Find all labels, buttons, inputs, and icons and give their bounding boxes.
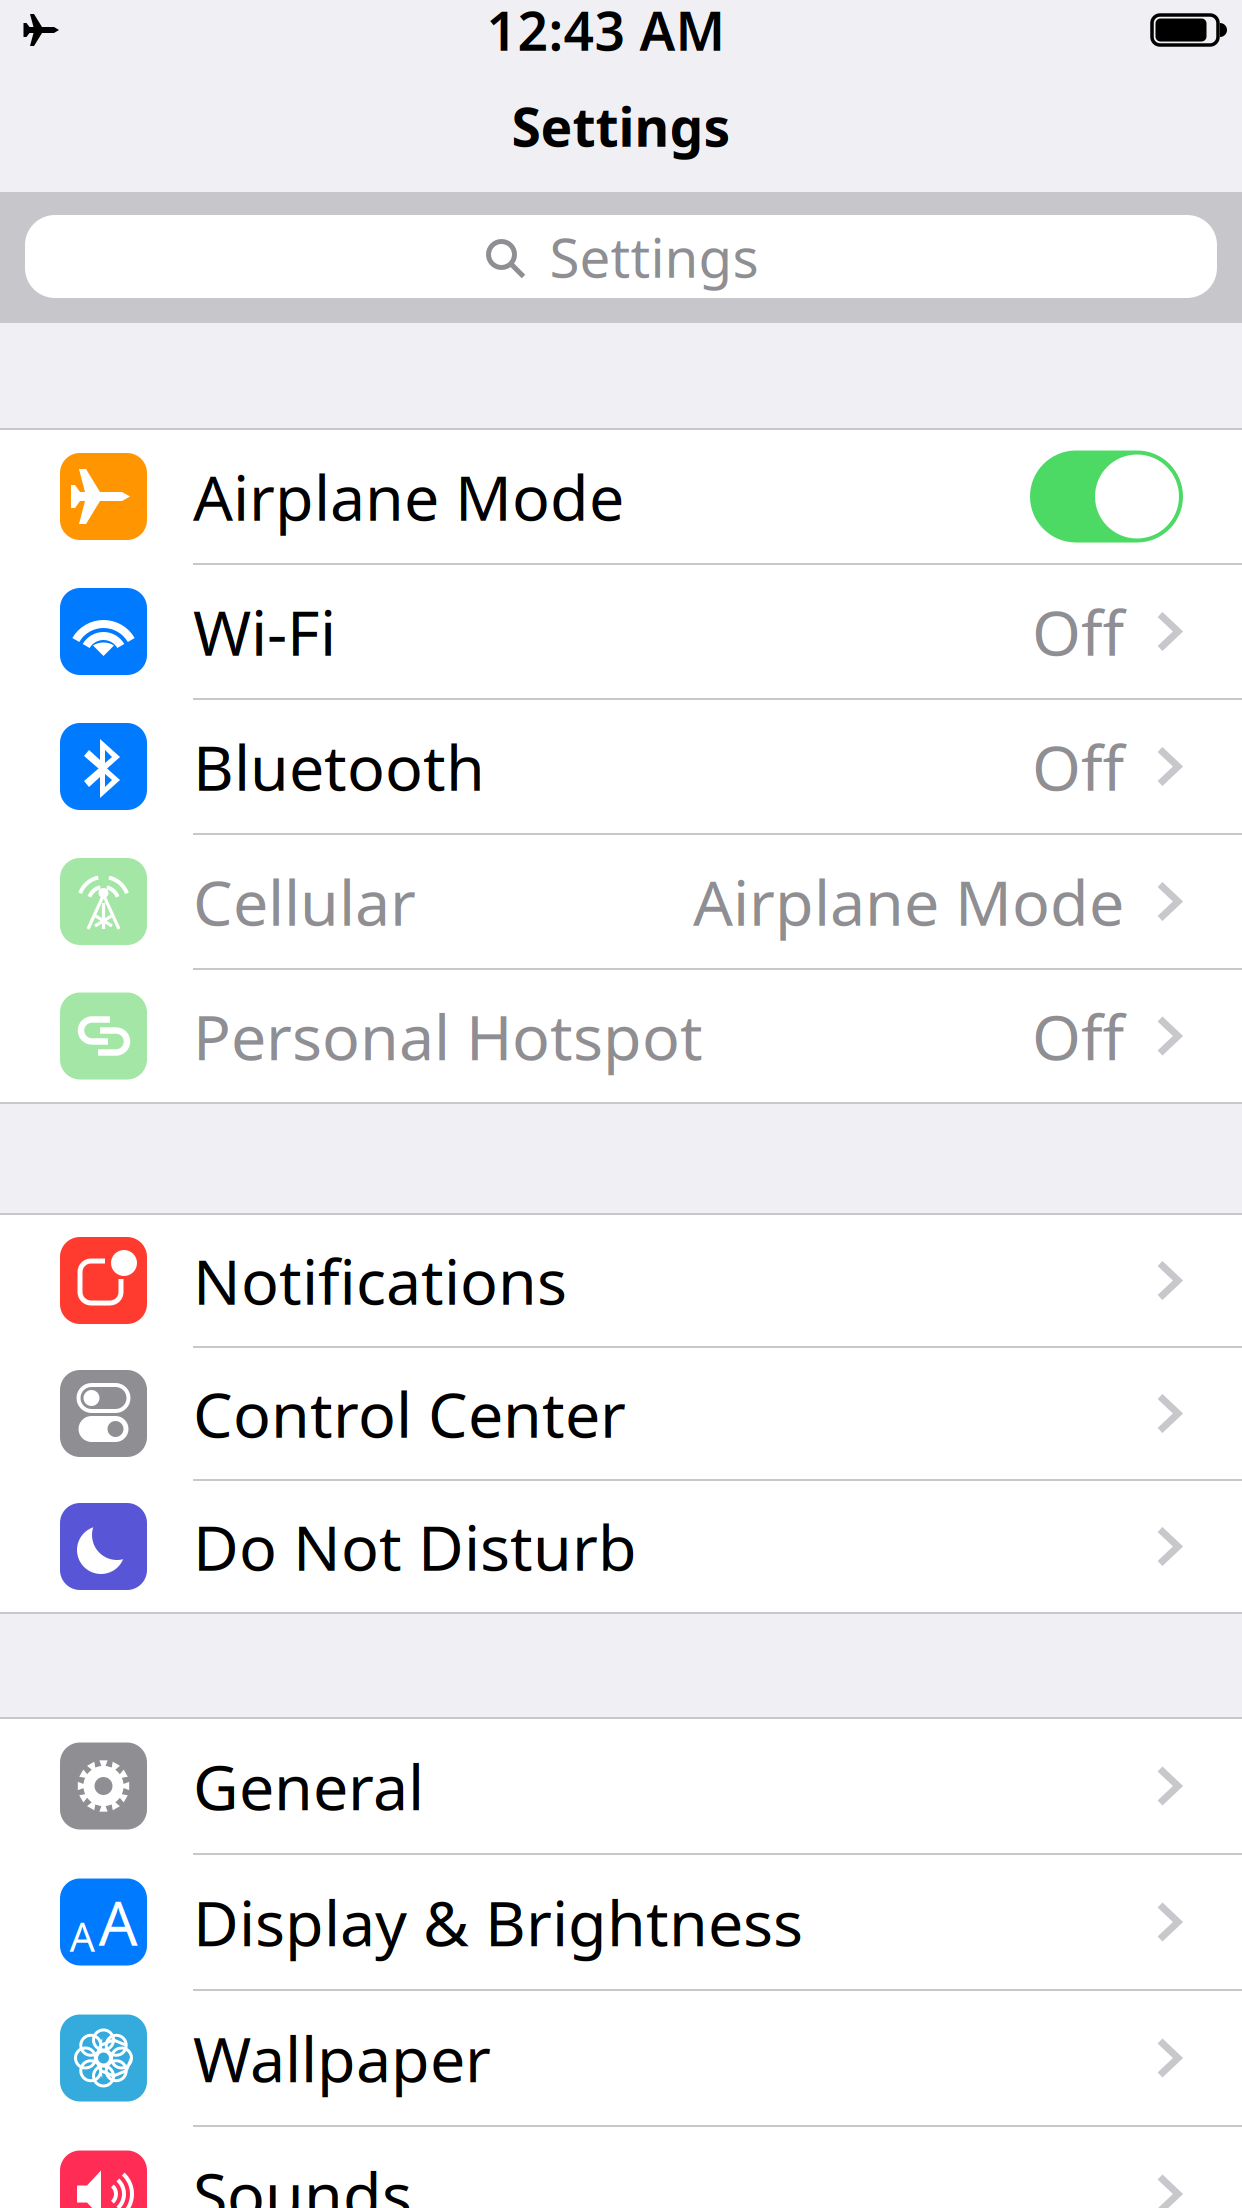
staticText: Off <box>1032 994 1124 1078</box>
staticText: General <box>193 1744 424 1828</box>
button[interactable]: Do Not Disturb <box>0 1481 1242 1612</box>
button[interactable]: A <box>0 1855 1242 1989</box>
staticText: Off <box>1032 590 1124 673</box>
staticText: Airplane Mode <box>693 860 1124 943</box>
staticText: 12:43 AM <box>486 0 725 65</box>
button[interactable]: Wi-Fi <box>0 565 1242 698</box>
button[interactable]: Bluetooth <box>0 700 1242 833</box>
button[interactable]: Personal Hotspot <box>0 970 1242 1102</box>
button[interactable]: Control Center <box>0 1348 1242 1479</box>
staticText: Cellular <box>193 860 416 943</box>
staticText: Sounds <box>193 2152 412 2208</box>
staticText: Settings <box>511 91 730 161</box>
staticText: Wi-Fi <box>193 590 336 673</box>
staticText: Settings <box>549 220 758 293</box>
staticText: Bluetooth <box>193 725 485 808</box>
staticText: Notifications <box>193 1239 567 1322</box>
button[interactable]: General <box>0 1719 1242 1853</box>
button[interactable]: Sounds <box>0 2127 1242 2208</box>
button[interactable]: Cellular <box>0 835 1242 968</box>
staticText: A <box>98 1881 137 1963</box>
staticText: Off <box>1032 725 1124 808</box>
staticText: Do Not Disturb <box>193 1505 637 1588</box>
staticText: Wallpaper <box>193 2016 491 2100</box>
staticText: A <box>69 1910 95 1963</box>
staticText: Airplane Mode <box>193 455 624 538</box>
button[interactable]: Airplane Mode <box>0 430 1242 563</box>
staticText: Control Center <box>193 1372 626 1455</box>
button[interactable]: Wallpaper <box>0 1991 1242 2125</box>
button[interactable]: Search Settings <box>0 192 1242 321</box>
staticText: Personal Hotspot <box>193 994 703 1078</box>
button[interactable]: Notifications <box>0 1215 1242 1346</box>
staticText: Display & Brightness <box>193 1880 803 1964</box>
